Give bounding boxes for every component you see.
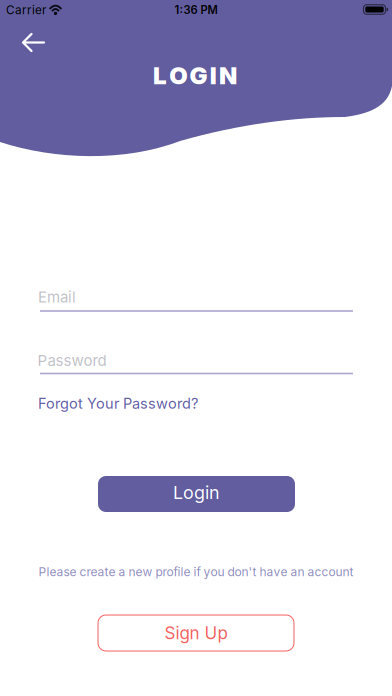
staticText: O (169, 61, 187, 90)
staticText: Email (38, 288, 76, 306)
button[interactable]: Login (98, 476, 295, 512)
staticText: G (189, 61, 207, 90)
staticText: N (219, 61, 237, 90)
staticText: 1:36 PM (174, 3, 217, 17)
staticText: Forgot Your Password? (38, 395, 198, 412)
button[interactable]: Back (13, 23, 54, 61)
staticText: Sign Up (164, 623, 227, 643)
staticText: Login (173, 482, 220, 503)
button[interactable]: Sign Up (98, 615, 294, 651)
staticText: Password (37, 351, 106, 369)
button[interactable]: Forgot Your Password? (38, 395, 198, 412)
staticText: I (210, 61, 217, 90)
staticText: Please create a new profile if you don't… (38, 565, 353, 579)
staticText: L (153, 61, 167, 90)
staticText: Carrier (6, 3, 46, 17)
